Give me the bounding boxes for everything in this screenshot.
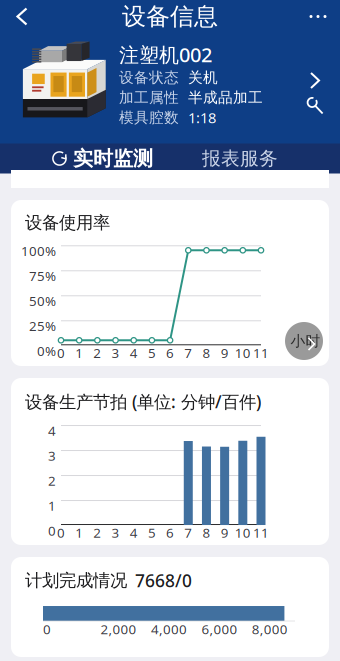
staticText: 6,000 (201, 620, 237, 638)
staticText: 加工属性 (119, 88, 179, 106)
staticText: 半成品加工 (188, 88, 263, 106)
button[interactable]: 实时监测 (52, 143, 153, 173)
staticText: 设备生产节拍 (单位: 分钟/百件) (25, 390, 261, 413)
staticText: 6 (166, 524, 174, 541)
staticText: 50% (29, 292, 56, 310)
staticText: 8 (202, 524, 210, 541)
button[interactable]: 报表服务 (202, 143, 278, 173)
staticText: 1:18 (188, 108, 216, 127)
staticText: 2,000 (101, 620, 137, 638)
staticText: 2 (93, 524, 101, 541)
staticText: 8,000 (252, 620, 288, 638)
staticText: 7 (184, 524, 192, 541)
staticText: 7 (184, 344, 192, 362)
staticText: 0 (57, 344, 65, 362)
staticText: 设备使用率 (25, 212, 110, 233)
staticText: 9 (221, 524, 229, 541)
staticText: 10 (235, 344, 251, 362)
button[interactable]: Details (302, 69, 328, 91)
staticText: 0 (48, 522, 56, 539)
staticText: 计划完成情况 (25, 570, 127, 591)
staticText: 25% (29, 317, 56, 335)
staticText: 3 (48, 447, 56, 464)
staticText: 5 (148, 524, 156, 541)
staticText: 5 (148, 344, 156, 362)
staticText: 设备信息 (122, 2, 218, 31)
staticText: 7668/0 (135, 569, 192, 592)
staticText: 0% (37, 342, 56, 360)
staticText: 4 (130, 524, 138, 541)
staticText: 11 (253, 524, 269, 541)
staticText: 3 (111, 524, 119, 541)
staticText: 3 (111, 344, 119, 362)
staticText: 2 (48, 472, 56, 489)
staticText: 9 (221, 344, 229, 362)
staticText: 1 (48, 497, 56, 514)
staticText: 8 (202, 344, 210, 362)
staticText: 0 (43, 620, 51, 638)
staticText: 2 (93, 344, 101, 362)
staticText: 报表服务 (202, 147, 278, 170)
staticText: 关机 (188, 68, 218, 86)
staticText: 75% (29, 267, 56, 285)
staticText: 1 (75, 524, 83, 541)
staticText: 1 (75, 344, 83, 362)
staticText: 10 (235, 524, 251, 541)
button[interactable]: Back (0, 0, 44, 36)
staticText: 11 (253, 344, 269, 362)
button[interactable]: 小时 (285, 322, 323, 360)
staticText: 实时监测 (73, 146, 153, 171)
staticText: 0 (57, 524, 65, 541)
staticText: 小时 (290, 332, 320, 350)
staticText: 模具腔数 (119, 108, 179, 126)
button[interactable]: Maintenance (302, 94, 328, 116)
staticText: 6 (166, 344, 174, 362)
staticText: 设备状态 (119, 68, 179, 86)
staticText: 4 (130, 344, 138, 362)
staticText: 4,000 (151, 620, 187, 638)
staticText: 100% (21, 242, 56, 260)
button[interactable]: More (296, 0, 340, 36)
staticText: 注塑机002 (119, 41, 212, 68)
staticText: 4 (48, 422, 56, 439)
